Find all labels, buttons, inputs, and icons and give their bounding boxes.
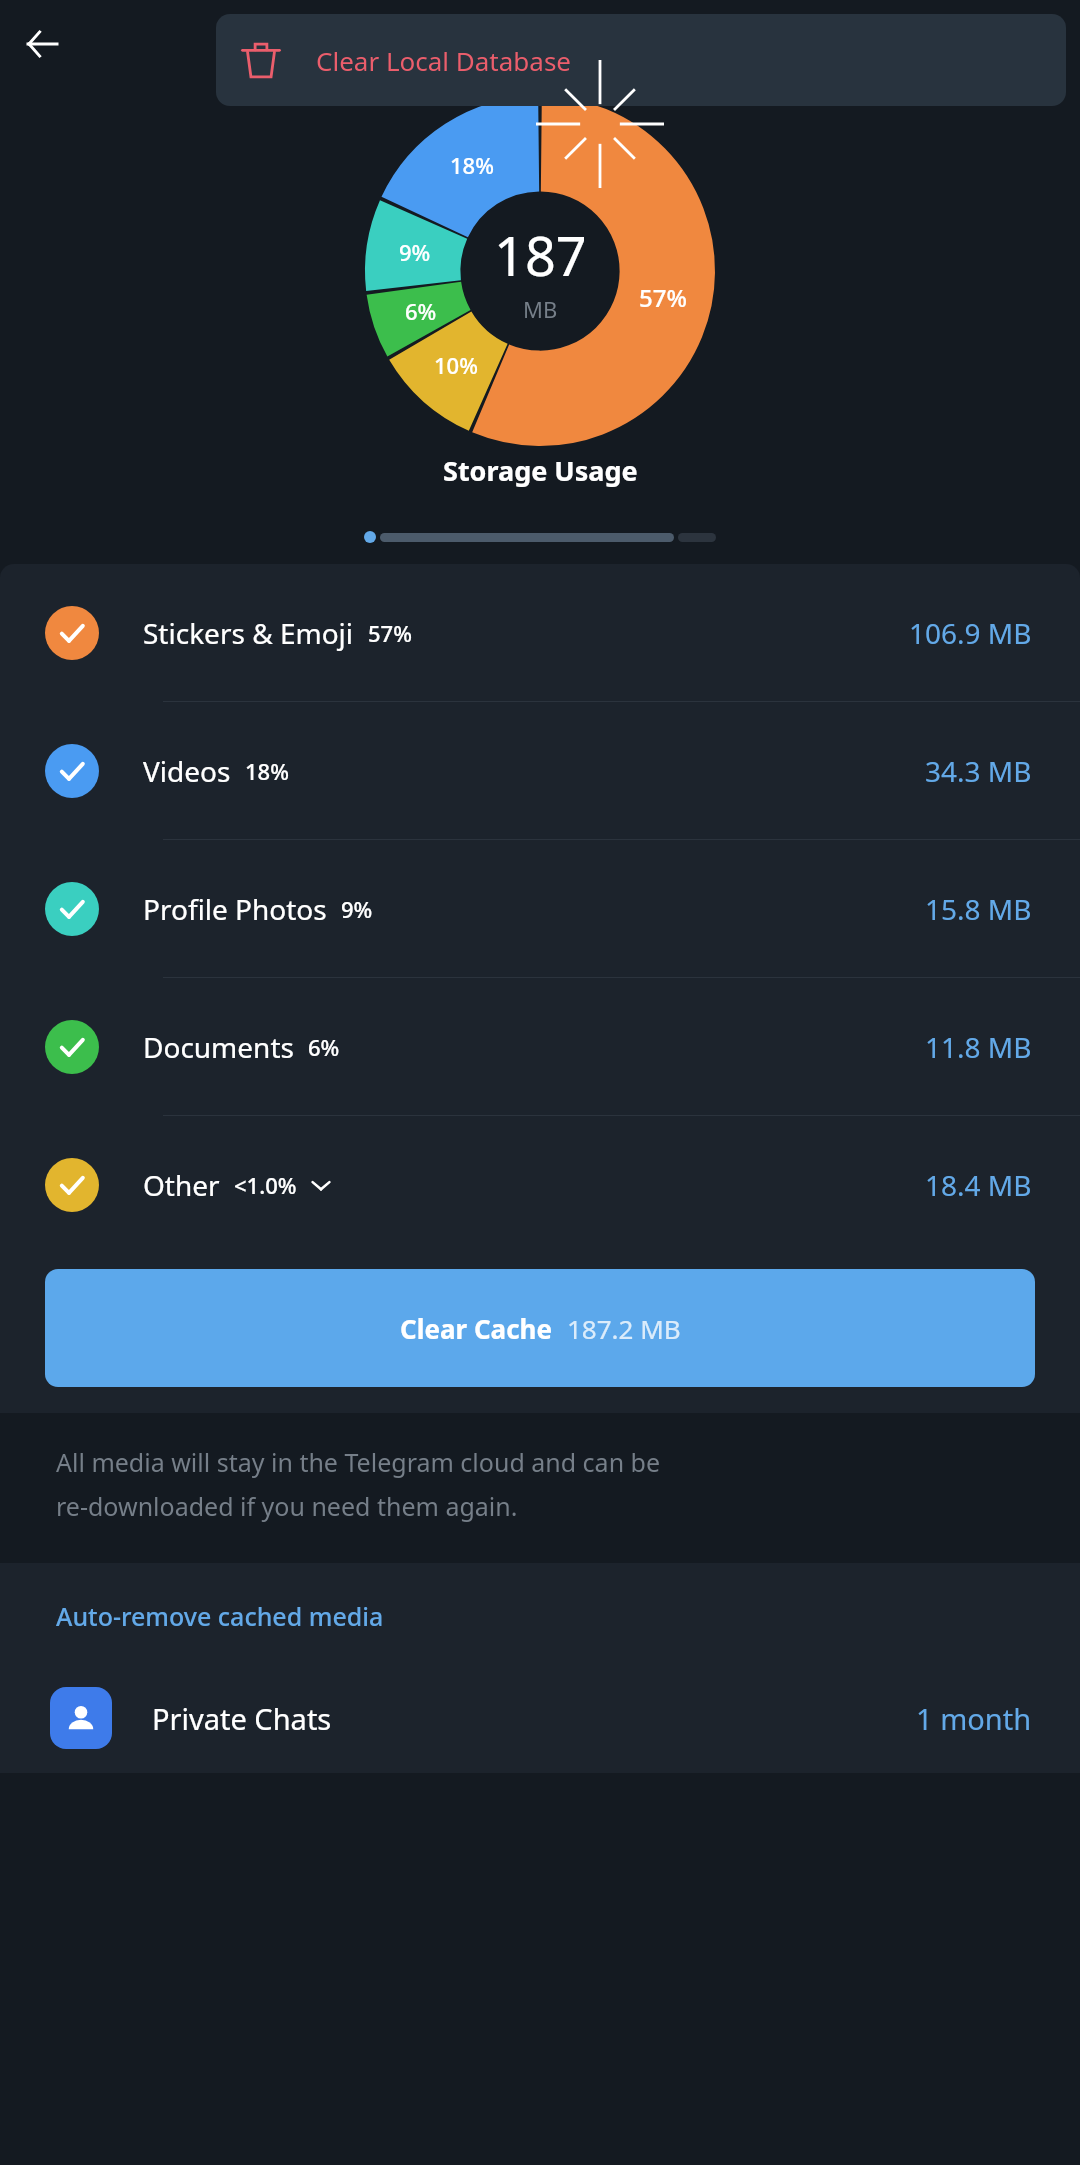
staticText: Private Chats bbox=[152, 1699, 332, 1738]
staticText: 15.8 MB bbox=[925, 890, 1032, 928]
staticText: <1.0% bbox=[234, 1170, 297, 1200]
staticText: Auto-remove cached media bbox=[56, 1599, 384, 1633]
button[interactable]: Clear Cache bbox=[45, 1269, 1035, 1387]
staticText: 11.8 MB bbox=[925, 1028, 1032, 1066]
staticText: Profile Photos bbox=[143, 890, 327, 928]
staticText: 6% bbox=[405, 296, 437, 326]
staticText: All media will stay in the Telegram clou… bbox=[56, 1445, 661, 1523]
staticText: 57% bbox=[368, 618, 412, 648]
staticText: Videos bbox=[143, 752, 231, 790]
staticText: Other bbox=[143, 1166, 220, 1204]
button[interactable]: Back bbox=[10, 12, 74, 76]
staticText: 18.4 MB bbox=[925, 1166, 1032, 1204]
button[interactable]: Private Chats bbox=[0, 1663, 1080, 1773]
staticText: MB bbox=[523, 294, 558, 324]
button[interactable]: Clear Local Database bbox=[216, 14, 1066, 106]
staticText: Clear Cache bbox=[400, 1311, 553, 1346]
staticText: 9% bbox=[341, 894, 373, 924]
staticText: 34.3 MB bbox=[925, 752, 1032, 790]
button[interactable]: Profile Photos bbox=[0, 840, 1080, 977]
staticText: 106.9 MB bbox=[909, 614, 1032, 652]
staticText: 9% bbox=[399, 237, 431, 267]
staticText: Storage Usage bbox=[443, 452, 638, 489]
staticText: 1 month bbox=[916, 1699, 1032, 1738]
staticText: Clear Local Database bbox=[316, 43, 572, 78]
staticText: 57% bbox=[639, 281, 687, 314]
staticText: Documents bbox=[143, 1028, 294, 1066]
button[interactable]: Other bbox=[0, 1116, 1080, 1253]
staticText: 18% bbox=[450, 150, 494, 180]
button[interactable]: Stickers & Emoji bbox=[0, 564, 1080, 701]
staticText: Stickers & Emoji bbox=[143, 614, 354, 652]
staticText: 10% bbox=[434, 350, 478, 380]
staticText: 18% bbox=[245, 756, 289, 786]
staticText: 187 bbox=[494, 218, 587, 292]
other: Sparkle bbox=[536, 60, 664, 188]
button[interactable]: Documents bbox=[0, 978, 1080, 1115]
staticText: 187.2 MB bbox=[567, 1311, 681, 1346]
staticText: 6% bbox=[308, 1032, 340, 1062]
button[interactable]: Videos bbox=[0, 702, 1080, 839]
